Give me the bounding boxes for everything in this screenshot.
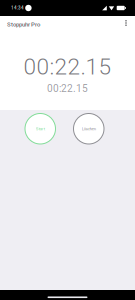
- staticText: 14:34: [11, 5, 24, 11]
- staticText: Stoppuhr Pro: [7, 21, 40, 28]
- staticText: Löschen: [82, 126, 96, 131]
- staticText: Start: [36, 126, 45, 131]
- button[interactable]: Start: [25, 113, 55, 144]
- button[interactable]: Löschen: [73, 113, 104, 144]
- staticText: 00:22.15: [47, 83, 88, 94]
- staticText: 00:22.15: [23, 53, 111, 80]
- button[interactable]: More options: [118, 16, 134, 32]
